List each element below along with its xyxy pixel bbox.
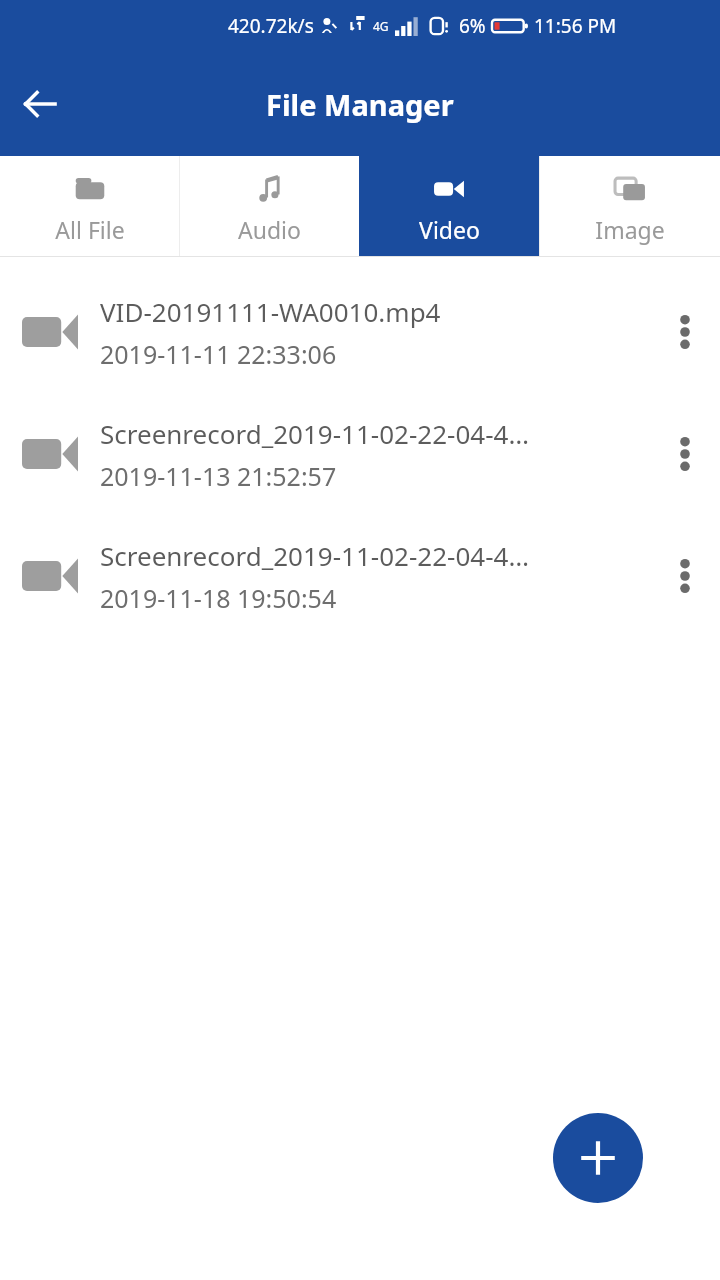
button[interactable]: Video xyxy=(359,156,539,256)
staticText: All File xyxy=(55,214,125,245)
button[interactable]: Back xyxy=(8,72,72,136)
button[interactable]: Image xyxy=(540,156,720,256)
staticText: 6% xyxy=(459,13,486,39)
button[interactable]: Screenrecord_2019-11-02-22-04-4… xyxy=(0,515,720,637)
button[interactable]: Add xyxy=(553,1113,643,1203)
staticText: 2019-11-18 19:50:54 xyxy=(100,581,337,615)
staticText: 11:56 PM xyxy=(534,13,617,39)
button[interactable]: All File xyxy=(0,156,179,256)
button[interactable]: More options xyxy=(650,393,720,515)
staticText: 4G xyxy=(373,18,389,34)
staticText: 2019-11-13 21:52:57 xyxy=(100,459,337,493)
staticText: Image xyxy=(595,214,665,245)
button[interactable]: VID-20191111-WA0010.mp4 xyxy=(0,271,720,393)
staticText: 420.72k/s xyxy=(228,13,314,39)
button[interactable]: Screenrecord_2019-11-02-22-04-4… xyxy=(0,393,720,515)
button[interactable]: Audio xyxy=(180,156,359,256)
staticText: Screenrecord_2019-11-02-22-04-4… xyxy=(100,416,529,451)
staticText: Screenrecord_2019-11-02-22-04-4… xyxy=(100,538,529,573)
button[interactable]: More options xyxy=(650,515,720,637)
staticText: File Manager xyxy=(266,85,454,124)
staticText: VID-20191111-WA0010.mp4 xyxy=(100,294,441,329)
button[interactable]: More options xyxy=(650,271,720,393)
staticText: Audio xyxy=(238,214,301,245)
staticText: 2019-11-11 22:33:06 xyxy=(100,337,337,371)
staticText: Video xyxy=(419,214,480,245)
